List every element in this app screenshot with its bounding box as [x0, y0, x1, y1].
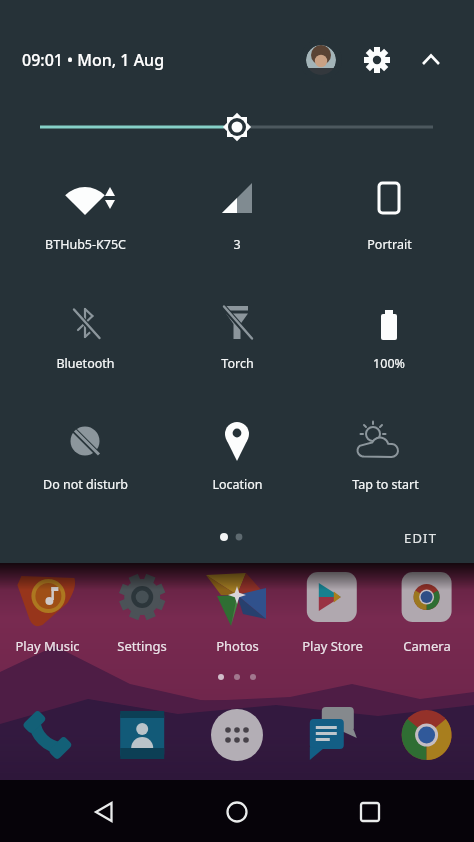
staticText: Camera — [403, 637, 451, 655]
button[interactable] — [202, 786, 272, 838]
button[interactable] — [323, 416, 455, 508]
button[interactable] — [19, 172, 151, 264]
button[interactable] — [388, 523, 452, 553]
button[interactable] — [171, 172, 303, 264]
button[interactable] — [171, 416, 303, 508]
button[interactable] — [19, 296, 151, 388]
button[interactable] — [197, 566, 277, 658]
button[interactable] — [292, 702, 372, 770]
button[interactable] — [197, 702, 277, 770]
staticText: EDIT — [404, 529, 438, 547]
staticText: 09:01 • Mon, 1 Aug — [22, 49, 165, 71]
staticText: BTHub5-K75C — [45, 236, 126, 253]
staticText: Play Music — [15, 637, 80, 655]
staticText: Location — [212, 476, 263, 493]
staticText: Photos — [216, 637, 259, 655]
staticText: Tap to start — [352, 476, 419, 493]
button[interactable] — [387, 566, 467, 658]
button[interactable] — [7, 566, 87, 658]
button[interactable] — [357, 40, 397, 80]
button[interactable] — [19, 416, 151, 508]
button[interactable] — [70, 786, 140, 838]
button[interactable] — [171, 296, 303, 388]
button[interactable] — [336, 786, 406, 838]
button[interactable] — [323, 296, 455, 388]
staticText: Torch — [221, 355, 254, 372]
button[interactable] — [411, 40, 451, 80]
button[interactable] — [7, 702, 87, 770]
button[interactable] — [102, 702, 182, 770]
staticText: Do not disturb — [43, 476, 128, 493]
staticText: Portrait — [367, 236, 412, 253]
staticText: 3 — [233, 236, 241, 253]
staticText: 100% — [373, 355, 405, 372]
button[interactable] — [292, 566, 372, 658]
button[interactable] — [301, 40, 341, 80]
button[interactable] — [323, 172, 455, 264]
button[interactable] — [102, 566, 182, 658]
staticText: Bluetooth — [56, 355, 115, 372]
button[interactable] — [30, 106, 444, 148]
staticText: Play Store — [302, 637, 363, 655]
staticText: Settings — [117, 637, 167, 655]
button[interactable] — [387, 702, 467, 770]
